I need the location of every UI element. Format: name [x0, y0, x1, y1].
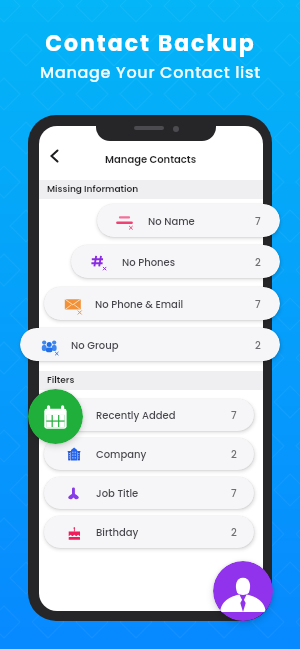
staticText: Filters — [47, 374, 75, 387]
staticText: 7 — [255, 214, 261, 228]
staticText: 7 — [231, 408, 237, 422]
staticText: No Phones — [122, 255, 176, 269]
button[interactable]: No Phone & Email — [44, 287, 280, 320]
button[interactable]: Birthday — [44, 516, 254, 548]
button[interactable]: Job Title — [44, 477, 254, 509]
staticText: No Phone & Email — [95, 297, 184, 311]
staticText: Manage Contacts — [105, 152, 197, 166]
staticText: 2 — [255, 338, 261, 352]
staticText: Missing Information — [47, 183, 139, 196]
staticText: Birthday — [96, 525, 139, 539]
staticText: Company — [96, 447, 147, 461]
staticText: 7 — [255, 297, 261, 311]
button[interactable]: Recently Added — [44, 399, 254, 431]
staticText: No Group — [71, 338, 119, 352]
button[interactable]: Recently Added — [28, 389, 83, 444]
staticText: No Name — [148, 214, 195, 228]
button[interactable]: No Name — [97, 204, 280, 237]
staticText: Recently Added — [96, 408, 176, 422]
staticText: 2 — [255, 255, 261, 269]
staticText: Contact Backup — [45, 28, 256, 59]
button[interactable]: No Phones — [71, 245, 280, 278]
staticText: Job Title — [96, 486, 139, 500]
staticText: 7 — [231, 486, 237, 500]
button[interactable]: Add contact — [213, 561, 273, 621]
staticText: Manage Your Contact list — [40, 61, 261, 83]
staticText: 2 — [231, 525, 237, 539]
button[interactable]: Back — [42, 144, 66, 168]
button[interactable]: Company — [44, 438, 254, 470]
button[interactable]: No Group — [20, 328, 280, 361]
staticText: 2 — [231, 447, 237, 461]
